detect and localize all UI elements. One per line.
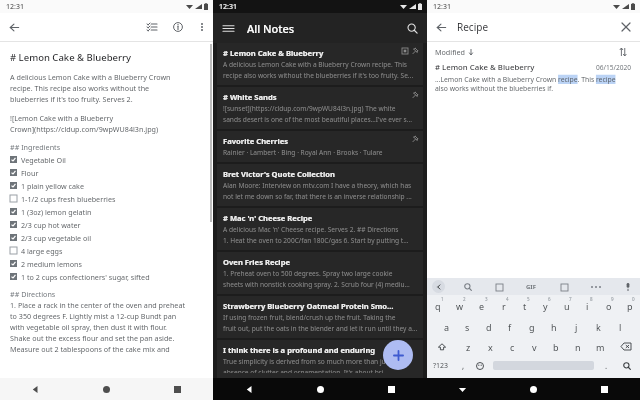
button[interactable]: Back bbox=[213, 378, 285, 400]
staticText: Measure out 2 tablespoons of the cake mi… bbox=[10, 344, 170, 354]
button[interactable]: GIF bbox=[522, 278, 540, 295]
button[interactable]: 0 bbox=[619, 295, 640, 316]
button[interactable]: Emoji bbox=[471, 356, 489, 375]
button[interactable]: 2/3 cup hot water bbox=[10, 218, 201, 231]
button[interactable]: # Mac 'n' Cheese Recipe bbox=[217, 208, 423, 250]
button[interactable]: z bbox=[457, 337, 479, 356]
staticText: h bbox=[551, 321, 557, 333]
button[interactable]: Modified bbox=[435, 47, 474, 57]
button[interactable]: 2/3 cup vegetable oil bbox=[10, 231, 201, 244]
staticText: n bbox=[575, 341, 581, 353]
button[interactable]: Strawberry Blueberry Oatmeal Protein Smo… bbox=[217, 296, 423, 338]
button[interactable]: Recents bbox=[356, 378, 427, 400]
button[interactable]: Recents bbox=[142, 378, 213, 400]
button[interactable]: Backspace bbox=[611, 337, 640, 356]
button[interactable]: Menu bbox=[213, 13, 243, 43]
staticText: All Notes bbox=[247, 21, 295, 36]
button[interactable]: j bbox=[565, 316, 587, 337]
staticText: A delicious Lemon Cake with a Blueberry … bbox=[10, 72, 171, 82]
button[interactable]: # Lemon Cake & Blueberry bbox=[217, 43, 423, 85]
staticText: 6 bbox=[548, 296, 551, 302]
staticText: 2/3 cup vegetable oil bbox=[21, 233, 92, 243]
button[interactable]: Hide keyboard bbox=[427, 378, 498, 400]
button[interactable]: ?123 bbox=[427, 356, 455, 375]
button[interactable]: Stickers bbox=[491, 279, 507, 295]
staticText: f bbox=[508, 321, 512, 333]
staticText: q bbox=[435, 300, 441, 312]
button[interactable]: Search bbox=[397, 13, 427, 43]
button[interactable]: l bbox=[609, 316, 631, 337]
button[interactable]: Previous bbox=[432, 280, 445, 293]
staticText: 06/15/2020 bbox=[596, 63, 632, 72]
button[interactable]: 4 bbox=[493, 295, 514, 316]
button[interactable]: Home bbox=[498, 378, 569, 400]
button[interactable]: g bbox=[521, 316, 543, 337]
button[interactable]: 2 bbox=[449, 295, 471, 316]
button[interactable]: 1 plain yellow cake bbox=[10, 179, 201, 192]
button[interactable]: Info bbox=[165, 14, 191, 40]
button[interactable]: 2 medium lemons bbox=[10, 257, 201, 270]
button[interactable]: n bbox=[567, 337, 589, 356]
button[interactable]: # Lemon Cake & Blueberry bbox=[427, 62, 640, 93]
staticText: 1. Heat the oven to 200C/fan 180C/gas 6.… bbox=[223, 236, 409, 245]
button[interactable]: # White Sands bbox=[217, 87, 423, 129]
staticText: z bbox=[466, 341, 471, 353]
button[interactable]: 4 large eggs bbox=[10, 244, 201, 257]
button[interactable]: b bbox=[545, 337, 567, 356]
button[interactable]: Shift bbox=[427, 337, 457, 356]
button[interactable]: 1 (3oz) lemon gelatin bbox=[10, 205, 201, 218]
button[interactable]: v bbox=[523, 337, 545, 356]
button[interactable]: 1 to 2 cups confectioners' sugar, sifted bbox=[10, 270, 201, 283]
button[interactable]: 6 bbox=[535, 295, 556, 316]
button[interactable]: Translate bbox=[556, 279, 572, 295]
button[interactable]: h bbox=[543, 316, 565, 337]
staticText: Crown](https://cldup.com/9wpWU84l3n.jpg) bbox=[10, 124, 159, 134]
staticText: ![sunset](https://cldup.com/9wpWU84l3n.j… bbox=[223, 104, 396, 113]
button[interactable]: 8 bbox=[577, 295, 598, 316]
button[interactable]: Comma bbox=[455, 356, 471, 375]
button[interactable]: Favorite Cherries bbox=[217, 131, 423, 162]
button[interactable]: f bbox=[499, 316, 521, 337]
button[interactable]: 1 bbox=[427, 295, 449, 316]
button[interactable]: Bret Victor's Quote Collection bbox=[217, 164, 423, 206]
staticText: # White Sands bbox=[223, 92, 395, 102]
button[interactable]: 3 bbox=[471, 295, 493, 316]
button[interactable]: a bbox=[436, 316, 457, 337]
button[interactable]: Back bbox=[0, 378, 71, 400]
button[interactable]: d bbox=[478, 316, 499, 337]
button[interactable]: Oven Fries Recipe bbox=[217, 252, 423, 294]
button[interactable]: Period bbox=[598, 356, 614, 375]
button[interactable]: Back bbox=[0, 13, 28, 41]
button[interactable]: Search bbox=[614, 356, 640, 375]
button[interactable]: 5 bbox=[514, 295, 535, 316]
staticText: j bbox=[575, 321, 578, 333]
button[interactable]: x bbox=[479, 337, 501, 356]
button[interactable]: 9 bbox=[598, 295, 619, 316]
button[interactable]: I think there is a profound and enduring bbox=[217, 340, 423, 378]
button[interactable]: m bbox=[589, 337, 611, 356]
button[interactable]: 1-1/2 cups fresh blueberries bbox=[10, 192, 201, 205]
staticText: d bbox=[486, 321, 492, 333]
staticText: 9 bbox=[611, 296, 614, 302]
button[interactable]: More options bbox=[588, 279, 604, 295]
button[interactable]: New note bbox=[383, 340, 413, 370]
button[interactable]: c bbox=[501, 337, 523, 356]
button[interactable]: More options bbox=[191, 16, 213, 38]
button[interactable]: Clear search bbox=[612, 13, 640, 41]
button[interactable]: Back bbox=[427, 13, 455, 41]
button[interactable]: Home bbox=[71, 378, 142, 400]
button[interactable]: Checklist bbox=[139, 14, 165, 40]
button[interactable]: 7 bbox=[556, 295, 577, 316]
button[interactable]: Search bbox=[460, 279, 476, 295]
button[interactable]: k bbox=[587, 316, 609, 337]
button[interactable]: Recents bbox=[569, 378, 640, 400]
button[interactable]: Flour bbox=[10, 166, 201, 179]
button[interactable]: s bbox=[457, 316, 478, 337]
button[interactable]: Voice input bbox=[620, 279, 636, 295]
button[interactable]: Sort order bbox=[614, 43, 632, 61]
staticText: Alan Moore: Interview on mtv.com I have … bbox=[223, 181, 412, 190]
staticText: 1. Preheat oven to 500 degrees. Spray tw… bbox=[223, 269, 393, 278]
button[interactable]: Home bbox=[285, 378, 356, 400]
button[interactable]: Vegetable Oil bbox=[10, 153, 201, 166]
